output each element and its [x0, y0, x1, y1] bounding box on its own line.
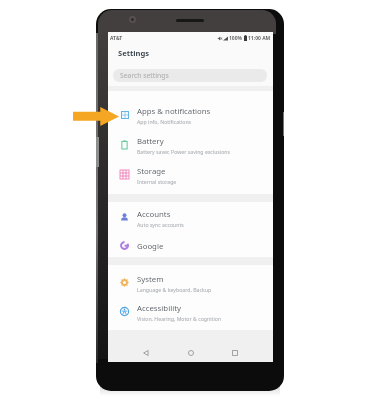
button[interactable]: Google [108, 230, 273, 260]
button[interactable]: Battery [108, 129, 273, 159]
staticText: System [137, 274, 164, 285]
button[interactable]: Accessibility [108, 296, 273, 326]
button[interactable]: Back [139, 346, 153, 360]
staticText: Language & keyboard, Backup [137, 286, 212, 293]
button[interactable]: Home [184, 346, 198, 360]
staticText: Accounts [137, 209, 171, 220]
button[interactable]: System [108, 267, 273, 297]
staticText: Storage [137, 166, 166, 177]
staticText: App info, Notifications [137, 118, 192, 125]
staticText: Battery [137, 136, 164, 147]
button[interactable]: Storage [108, 159, 273, 189]
staticText: Accessibility [137, 303, 181, 314]
staticText: 11:00 AM [248, 35, 271, 42]
staticText: Battery saver, Power saving exclusions [137, 148, 231, 155]
staticText: 100% [229, 35, 243, 42]
staticText: Google [137, 241, 164, 252]
staticText: Vision, Hearing, Motor & cognition [137, 315, 222, 322]
staticText: Settings [118, 48, 150, 58]
button[interactable]: Recent apps [228, 346, 242, 360]
button[interactable]: Apps & notifications [108, 99, 273, 129]
staticText: Auto sync accounts [137, 221, 184, 228]
staticText: Search settings [120, 71, 169, 80]
staticText: Apps & notifications [137, 106, 211, 117]
staticText: Internal storage [137, 178, 177, 185]
button[interactable]: Search settings [113, 69, 267, 82]
button[interactable]: Accounts [108, 202, 273, 232]
staticText: AT&T [110, 35, 123, 42]
